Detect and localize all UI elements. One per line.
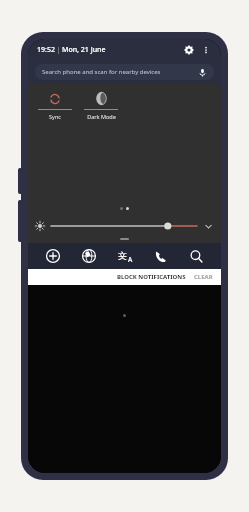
button[interactable]: Browser bbox=[78, 245, 100, 267]
button[interactable]: Translate bbox=[114, 245, 136, 267]
staticText: 19:52 bbox=[37, 45, 55, 55]
button[interactable]: Phone bbox=[149, 245, 171, 267]
button[interactable]: Add bbox=[42, 245, 64, 267]
button[interactable]: CLEAR bbox=[189, 271, 221, 283]
staticText: A bbox=[128, 255, 133, 264]
staticText: Mon, 21 June bbox=[62, 45, 106, 55]
button[interactable]: Sync bbox=[32, 87, 78, 120]
staticText: Sync bbox=[49, 113, 61, 120]
button[interactable]: More options bbox=[199, 43, 213, 57]
staticText: Search phone and scan for nearby devices bbox=[42, 68, 161, 76]
button[interactable]: Expand bbox=[202, 220, 214, 232]
staticText: 文 bbox=[118, 250, 127, 261]
staticText: Dark Mode bbox=[87, 113, 116, 120]
button[interactable]: BLOCK NOTIFICATIONS bbox=[114, 271, 189, 283]
staticText: BLOCK NOTIFICATIONS bbox=[117, 273, 186, 281]
button[interactable]: Search bbox=[185, 245, 207, 267]
button[interactable]: Search phone and scan for nearby devices bbox=[35, 64, 214, 80]
button[interactable]: Dark Mode bbox=[78, 87, 124, 120]
button[interactable]: Settings bbox=[181, 42, 197, 58]
staticText: CLEAR bbox=[194, 273, 213, 281]
